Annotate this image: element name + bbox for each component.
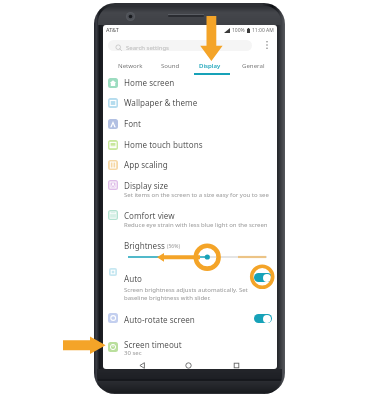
button[interactable]: Display xyxy=(189,56,231,74)
staticText: (56%) xyxy=(167,243,180,250)
button[interactable]: Home screen xyxy=(103,73,277,93)
staticText: Auto xyxy=(124,273,142,284)
staticText: Home touch buttons xyxy=(124,139,203,150)
staticText: Display xyxy=(199,61,221,69)
staticText: Search settings xyxy=(126,44,169,51)
button[interactable]: Comfort view xyxy=(103,206,277,230)
staticText: Font xyxy=(124,118,142,129)
staticText: Screen timeout xyxy=(124,339,182,350)
staticText: Auto-rotate screen xyxy=(124,314,195,325)
button[interactable]: Screen timeout xyxy=(103,334,277,356)
staticText: Home screen xyxy=(124,77,175,88)
staticText: Comfort view xyxy=(124,210,175,221)
button[interactable]: Back xyxy=(131,355,152,369)
button[interactable]: Toggle xyxy=(254,314,272,323)
staticText: Screen brightness adjusts automatically.… xyxy=(124,286,248,294)
button[interactable]: Home xyxy=(178,355,199,369)
staticText: Set items on the screen to a size easy f… xyxy=(124,191,269,199)
staticText: App scaling xyxy=(124,159,168,170)
staticText: Display size xyxy=(124,180,169,191)
button[interactable]: Toggle xyxy=(254,273,272,282)
staticText: General xyxy=(242,61,265,69)
button[interactable]: Wallpaper & theme xyxy=(103,93,277,113)
button[interactable]: Display size xyxy=(103,176,277,200)
staticText: Network xyxy=(118,61,143,69)
staticText: 100% xyxy=(232,27,245,34)
button[interactable]: Font xyxy=(103,114,277,134)
button[interactable]: Sound xyxy=(149,56,191,74)
button[interactable]: Home touch buttons xyxy=(103,135,277,155)
button[interactable]: Auto xyxy=(103,267,277,305)
button[interactable]: Network xyxy=(109,56,151,74)
staticText: 30 sec xyxy=(124,349,142,357)
staticText: Sound xyxy=(161,61,180,69)
staticText: Reduce eye strain with less blue light o… xyxy=(124,221,268,229)
button[interactable]: Recent apps xyxy=(226,355,247,369)
staticText: 11:00 AM xyxy=(252,27,274,34)
staticText: Wallpaper & theme xyxy=(124,97,198,108)
button[interactable]: Search settings xyxy=(108,40,252,51)
staticText: baseline brightness with slider. xyxy=(124,294,211,302)
button[interactable]: App scaling xyxy=(103,155,277,175)
staticText: Brightness xyxy=(124,240,165,251)
staticText: AT&T xyxy=(106,26,119,33)
button[interactable]: General xyxy=(232,56,274,74)
button[interactable]: Auto-rotate screen xyxy=(103,309,277,329)
button[interactable]: More options xyxy=(261,37,273,53)
